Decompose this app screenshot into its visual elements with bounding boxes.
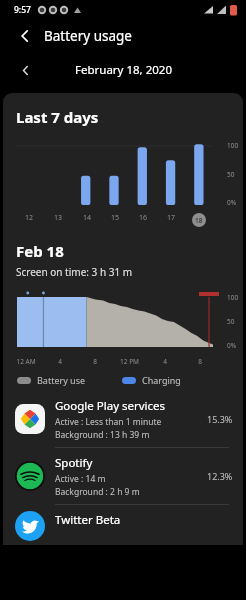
staticText: Active : 14 m — [55, 473, 106, 485]
staticText: 15 — [111, 213, 120, 223]
button[interactable]: 100 — [3, 289, 243, 369]
button[interactable]: Spotify — [3, 448, 243, 504]
staticText: 15.3% — [207, 413, 233, 425]
staticText: 0% — [227, 198, 237, 207]
staticText: 18 — [195, 216, 203, 225]
staticText: Battery usage — [44, 27, 132, 45]
staticText: 50 — [227, 317, 235, 326]
staticText: 100 — [227, 141, 239, 150]
staticText: Spotify — [55, 455, 93, 471]
staticText: 12 PM — [120, 357, 139, 366]
staticText: February 18, 2020 — [75, 62, 172, 78]
staticText: 12 AM — [16, 357, 36, 366]
staticText: Google Play services — [55, 398, 166, 414]
staticText: 4 — [58, 357, 62, 366]
staticText: 14 — [83, 213, 92, 223]
staticText: 50 — [227, 170, 235, 179]
staticText: Feb 18 — [16, 241, 64, 261]
staticText: 4 — [163, 357, 167, 366]
staticText: 0% — [227, 341, 237, 350]
button[interactable]: 100 — [3, 139, 243, 231]
staticText: 9:57 — [14, 4, 31, 16]
staticText: Background : 2 h 9 m — [55, 486, 140, 498]
button[interactable]: Previous day — [14, 59, 36, 81]
staticText: 16 — [139, 213, 148, 223]
staticText: Last 7 days — [16, 107, 99, 127]
button[interactable]: Twitter Beta — [3, 505, 243, 545]
staticText: 8 — [93, 357, 97, 366]
button[interactable]: Google Play services — [3, 391, 243, 447]
staticText: Screen on time: 3 h 31 m — [16, 265, 133, 279]
staticText: 12.3% — [207, 470, 233, 482]
staticText: 12 — [25, 213, 34, 223]
button[interactable]: Back — [12, 23, 38, 49]
staticText: Background : 13 h 39 m — [55, 429, 150, 441]
staticText: Active : Less than 1 minute — [55, 416, 162, 428]
staticText: Charging — [142, 374, 181, 386]
staticText: 13 — [54, 213, 63, 223]
staticText: 17 — [167, 213, 176, 223]
staticText: 8 — [198, 357, 202, 366]
staticText: Twitter Beta — [55, 512, 121, 528]
staticText: 100 — [227, 293, 239, 302]
staticText: Battery use — [37, 374, 86, 386]
